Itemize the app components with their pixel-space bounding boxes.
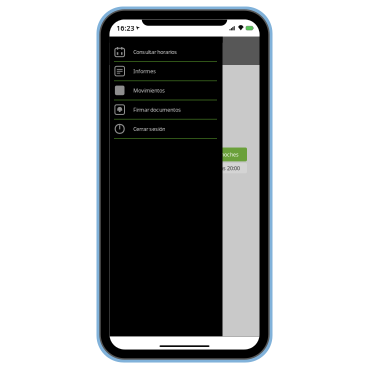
button[interactable]: Firmar documentos (109, 100, 222, 120)
button[interactable]: Consultar horarios (109, 43, 222, 62)
staticText: Movimientos (133, 87, 165, 94)
button[interactable]: Movimientos (109, 81, 222, 100)
staticText: Consultar horarios (133, 48, 177, 55)
staticText: 16:23 (116, 24, 134, 33)
staticText: Firmar documentos (133, 106, 181, 113)
staticText: Hoy a las 20:00 (204, 165, 240, 172)
staticText: Buenas noches (202, 151, 239, 158)
staticText: Cerrar sesión (133, 125, 165, 132)
button[interactable]: Cerrar sesión (109, 120, 222, 139)
button[interactable]: Informes (109, 62, 222, 81)
staticText: Informes (133, 68, 156, 75)
